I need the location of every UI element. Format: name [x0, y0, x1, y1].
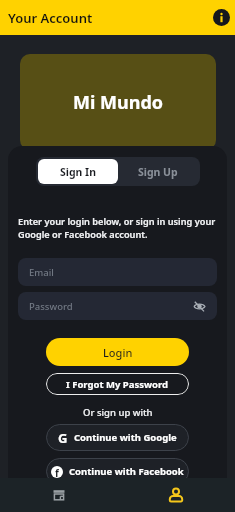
- button[interactable]: f: [46, 458, 189, 485]
- staticText: Email: [29, 266, 54, 279]
- staticText: Or sign up with: [83, 406, 153, 419]
- button[interactable]: Sign In: [38, 159, 118, 184]
- staticText: Enter your login below, or sign in using…: [18, 215, 216, 241]
- button[interactable]: [117, 478, 235, 512]
- staticText: Continue with Facebook: [69, 465, 184, 478]
- button[interactable]: G: [46, 424, 189, 451]
- staticText: Password: [29, 300, 73, 313]
- button[interactable]: Sign Up: [118, 159, 198, 184]
- button[interactable]: [213, 9, 230, 26]
- staticText: Your Account: [8, 9, 93, 27]
- button[interactable]: I Forgot My Password: [46, 373, 189, 395]
- staticText: Login: [103, 345, 133, 360]
- button[interactable]: Login: [46, 338, 189, 366]
- button[interactable]: Email: [18, 258, 217, 286]
- staticText: f: [55, 466, 59, 478]
- staticText: G: [58, 429, 68, 447]
- staticText: Sign In: [60, 165, 97, 179]
- staticText: Continue with Google: [74, 431, 177, 444]
- button[interactable]: Password: [18, 292, 217, 320]
- staticText: I Forgot My Password: [66, 378, 169, 391]
- button[interactable]: [0, 478, 117, 512]
- staticText: Sign Up: [138, 165, 178, 179]
- staticText: Mi Mundo: [73, 90, 164, 115]
